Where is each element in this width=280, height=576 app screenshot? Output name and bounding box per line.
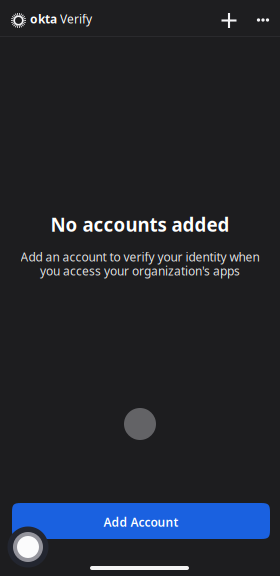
staticText: Verify [60, 11, 92, 27]
staticText: okta [30, 11, 57, 27]
button[interactable]: Add Account [12, 503, 270, 539]
staticText: you access your organization's apps [40, 263, 240, 279]
button[interactable]: More options [247, 4, 279, 36]
staticText: Add an account to verify your identity w… [20, 249, 259, 265]
button[interactable]: AssistiveTouch [7, 526, 48, 567]
button[interactable]: Add account [212, 4, 245, 37]
staticText: Add Account [103, 514, 178, 530]
staticText: No accounts added [50, 212, 229, 237]
